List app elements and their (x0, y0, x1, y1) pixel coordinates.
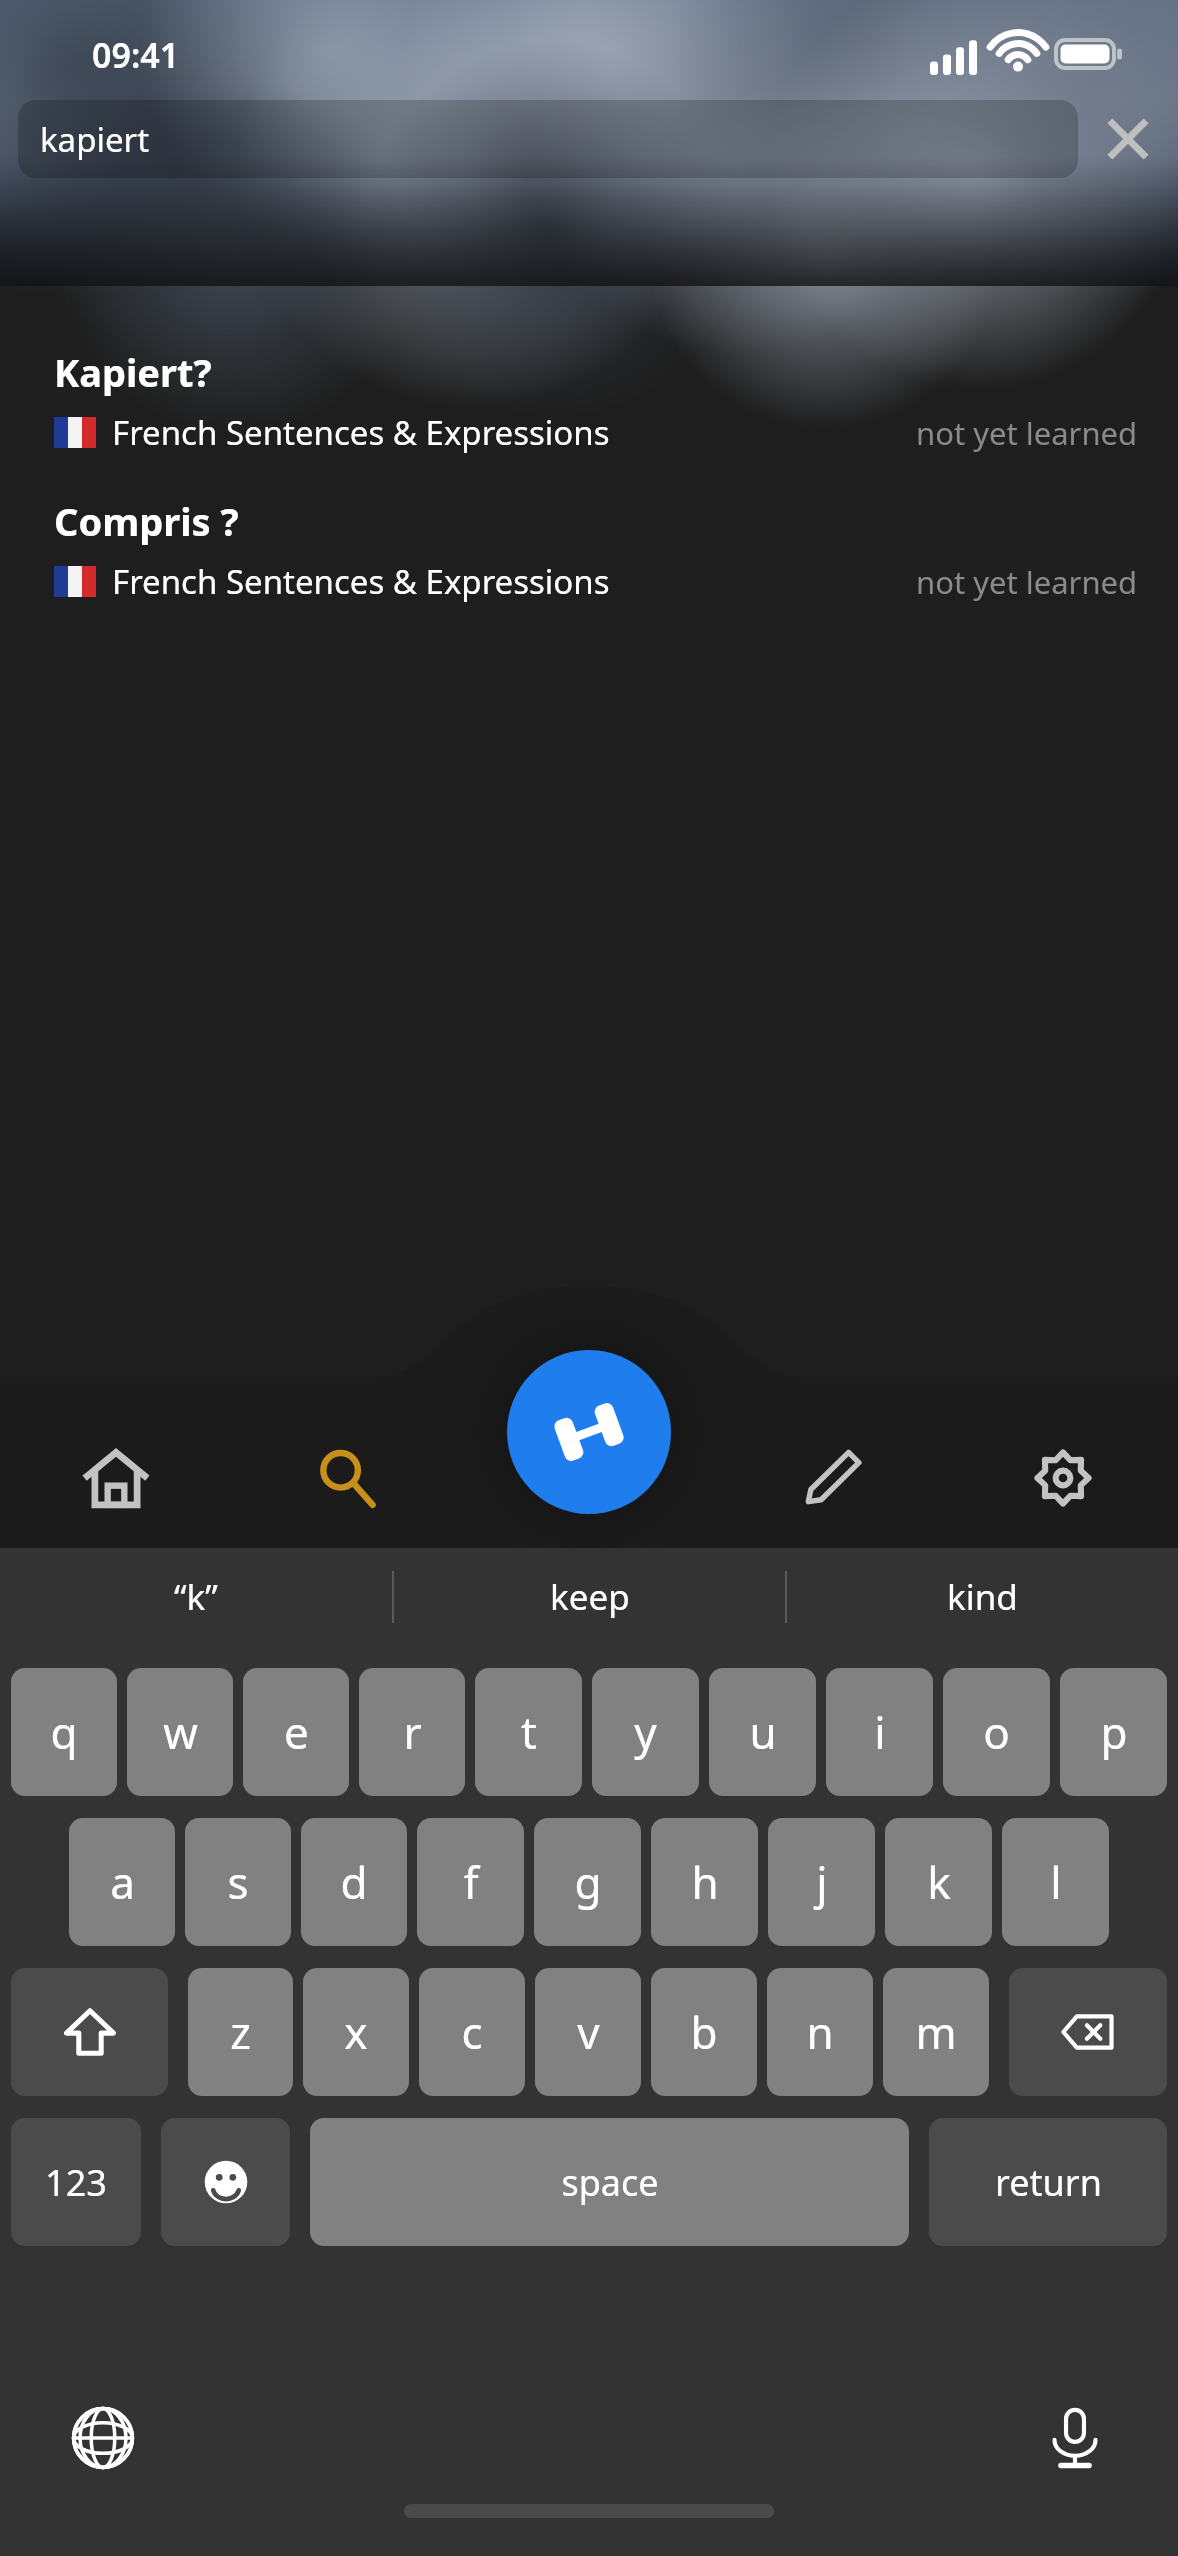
button[interactable]: f (417, 1818, 524, 1946)
button[interactable]: l (1002, 1818, 1109, 1946)
staticText: j (816, 1852, 828, 1912)
button[interactable]: w (127, 1668, 233, 1796)
button[interactable]: t (475, 1668, 582, 1796)
button[interactable]: return (929, 2118, 1167, 2246)
button[interactable]: Backspace (1009, 1968, 1167, 2096)
staticText: space (561, 2158, 659, 2207)
staticText: 123 (45, 2158, 107, 2207)
staticText: Kapiert? (54, 346, 212, 398)
button[interactable]: kapiert (18, 100, 1078, 178)
staticText: French Sentences & Expressions (112, 559, 610, 604)
staticText: a (110, 1852, 135, 1912)
button[interactable]: v (535, 1968, 641, 2096)
button[interactable]: 123 (11, 2118, 141, 2246)
button[interactable]: space (310, 2118, 909, 2246)
staticText: g (574, 1852, 602, 1912)
staticText: l (1050, 1852, 1062, 1912)
staticText: keep (550, 1573, 630, 1621)
staticText: c (461, 2002, 483, 2062)
button[interactable]: Shift (11, 1968, 168, 2096)
staticText: r (403, 1702, 422, 1762)
staticText: not yet learned (916, 561, 1138, 603)
staticText: return (995, 2158, 1102, 2207)
button[interactable]: y (592, 1668, 699, 1796)
staticText: d (340, 1852, 368, 1912)
staticText: i (874, 1702, 886, 1762)
staticText: m (915, 2002, 957, 2062)
button[interactable]: “k” (0, 1548, 392, 1646)
button[interactable]: Clear search (1078, 100, 1178, 178)
staticText: f (463, 1852, 479, 1912)
staticText: k (927, 1852, 951, 1912)
button[interactable]: q (11, 1668, 117, 1796)
staticText: x (344, 2002, 368, 2062)
staticText: u (749, 1702, 777, 1762)
button[interactable]: i (826, 1668, 933, 1796)
button[interactable]: Emoji (161, 2118, 290, 2246)
staticText: 09:41 (92, 32, 180, 78)
button[interactable]: h (651, 1818, 758, 1946)
button[interactable]: n (767, 1968, 873, 2096)
staticText: w (163, 1702, 198, 1762)
button[interactable]: o (943, 1668, 1050, 1796)
staticText: e (284, 1702, 309, 1762)
button[interactable]: m (883, 1968, 989, 2096)
staticText: b (690, 2002, 718, 2062)
button[interactable]: keep (394, 1548, 785, 1646)
button[interactable]: x (303, 1968, 409, 2096)
button[interactable]: Practice (507, 1350, 671, 1514)
staticText: n (806, 2002, 834, 2062)
button[interactable]: e (243, 1668, 349, 1796)
button[interactable]: a (69, 1818, 175, 1946)
button[interactable]: j (768, 1818, 875, 1946)
button[interactable]: Compris ? (0, 461, 1178, 610)
staticText: Compris ? (54, 495, 239, 547)
staticText: “k” (174, 1573, 218, 1621)
button[interactable]: Search (231, 1408, 462, 1548)
button[interactable]: Settings (947, 1408, 1178, 1548)
button[interactable]: p (1060, 1668, 1167, 1796)
staticText: h (691, 1852, 719, 1912)
staticText: French Sentences & Expressions (112, 410, 610, 455)
staticText: o (983, 1702, 1010, 1762)
button[interactable]: Change keyboard language (58, 2393, 148, 2483)
staticText: t (521, 1702, 537, 1762)
staticText: v (577, 2002, 600, 2062)
staticText: z (230, 2002, 251, 2062)
staticText: p (1100, 1702, 1128, 1762)
button[interactable]: s (185, 1818, 291, 1946)
button[interactable]: g (534, 1818, 641, 1946)
staticText: q (50, 1702, 78, 1762)
button[interactable]: d (301, 1818, 407, 1946)
button[interactable]: u (709, 1668, 816, 1796)
button[interactable]: Home (0, 1408, 231, 1548)
staticText: kapiert (40, 117, 150, 162)
button[interactable]: k (885, 1818, 992, 1946)
staticText: not yet learned (916, 412, 1138, 454)
button[interactable]: kind (787, 1548, 1178, 1646)
button[interactable]: Dictation (1030, 2393, 1120, 2483)
button[interactable]: Edit (716, 1408, 947, 1548)
staticText: s (227, 1852, 249, 1912)
staticText: kind (947, 1573, 1018, 1621)
button[interactable]: Kapiert? (0, 286, 1178, 461)
button[interactable]: z (188, 1968, 293, 2096)
staticText: y (634, 1702, 657, 1762)
button[interactable]: c (419, 1968, 525, 2096)
button[interactable]: b (651, 1968, 757, 2096)
button[interactable]: r (359, 1668, 465, 1796)
